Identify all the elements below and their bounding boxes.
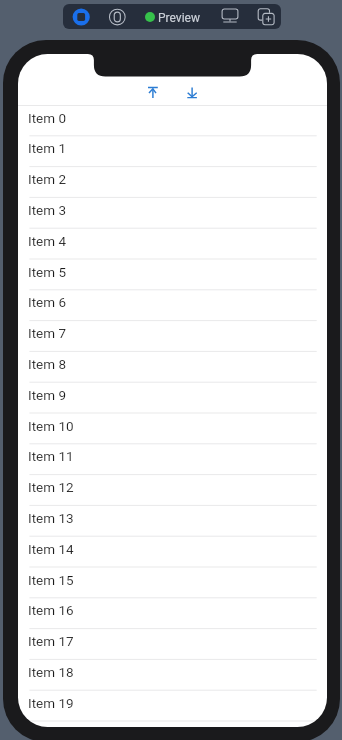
button[interactable]: Inspect layout bbox=[105, 4, 129, 29]
button[interactable]: Scroll to top bbox=[135, 76, 171, 104]
button[interactable]: New preview bbox=[253, 4, 278, 29]
button[interactable]: Stop bbox=[69, 4, 93, 29]
button[interactable]: Item 3 bbox=[18, 197, 327, 228]
button[interactable]: Item 0 bbox=[18, 105, 327, 136]
staticText: Item 19 bbox=[28, 695, 74, 711]
button[interactable]: Scroll to bottom bbox=[174, 76, 210, 104]
button[interactable]: Item 1 bbox=[18, 135, 327, 166]
button[interactable]: Item 16 bbox=[18, 597, 327, 628]
button[interactable]: Item 14 bbox=[18, 536, 327, 567]
button[interactable]: Item 11 bbox=[18, 443, 327, 474]
staticText: Item 18 bbox=[28, 664, 74, 680]
button[interactable]: Item 2 bbox=[18, 166, 327, 197]
staticText: Item 7 bbox=[28, 325, 67, 341]
button[interactable]: Item 18 bbox=[18, 659, 327, 690]
button[interactable]: Preview bbox=[145, 4, 200, 29]
staticText: Item 14 bbox=[28, 541, 74, 557]
button[interactable]: Item 10 bbox=[18, 413, 327, 444]
button[interactable]: Item 15 bbox=[18, 567, 327, 598]
button[interactable]: Item 17 bbox=[18, 628, 327, 659]
staticText: Item 1 bbox=[28, 140, 67, 156]
staticText: Item 4 bbox=[28, 233, 67, 249]
button[interactable]: Item 4 bbox=[18, 228, 327, 259]
staticText: Item 17 bbox=[28, 633, 74, 649]
staticText: Item 13 bbox=[28, 510, 74, 526]
button[interactable]: Item 13 bbox=[18, 505, 327, 536]
button[interactable]: Item 5 bbox=[18, 259, 327, 290]
staticText: Item 9 bbox=[28, 387, 67, 403]
staticText: Item 12 bbox=[28, 479, 74, 495]
staticText: Item 5 bbox=[28, 264, 67, 280]
button[interactable]: Item 12 bbox=[18, 474, 327, 505]
staticText: Item 6 bbox=[28, 294, 67, 310]
button[interactable]: Item 7 bbox=[18, 320, 327, 351]
button[interactable]: Item 6 bbox=[18, 289, 327, 320]
staticText: Item 0 bbox=[28, 110, 67, 126]
staticText: Preview bbox=[158, 11, 200, 25]
staticText: Item 3 bbox=[28, 202, 67, 218]
button[interactable]: Run on device bbox=[217, 4, 242, 29]
button[interactable]: Item 9 bbox=[18, 382, 327, 413]
staticText: Item 8 bbox=[28, 356, 67, 372]
staticText: Item 16 bbox=[28, 602, 74, 618]
button[interactable]: Item 8 bbox=[18, 351, 327, 382]
staticText: Item 11 bbox=[28, 448, 74, 464]
staticText: Item 15 bbox=[28, 572, 74, 588]
staticText: Item 10 bbox=[28, 418, 74, 434]
button[interactable]: Item 19 bbox=[18, 690, 327, 721]
staticText: Item 2 bbox=[28, 171, 67, 187]
